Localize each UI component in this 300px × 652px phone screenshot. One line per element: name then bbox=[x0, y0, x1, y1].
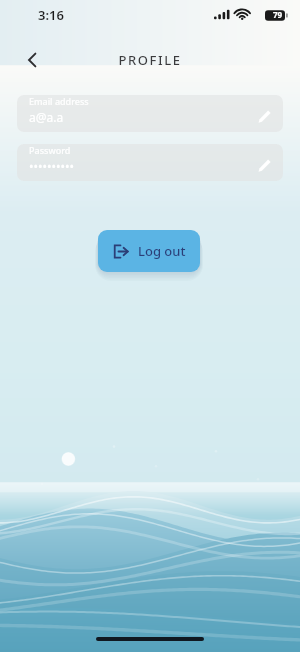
staticText: Password bbox=[29, 144, 71, 156]
staticText: a@a.a bbox=[29, 109, 64, 125]
button[interactable]: Log out bbox=[98, 230, 200, 272]
other: Edit email address bbox=[253, 105, 275, 127]
other: Edit password bbox=[253, 154, 275, 176]
staticText: 3:16 bbox=[38, 6, 64, 24]
staticText: Log out bbox=[138, 242, 186, 260]
button[interactable]: Back bbox=[16, 43, 50, 77]
staticText: •••••••••• bbox=[29, 158, 75, 174]
button[interactable]: Email address bbox=[17, 95, 283, 132]
button[interactable]: Password bbox=[17, 144, 283, 181]
staticText: 79 bbox=[273, 9, 283, 20]
staticText: Email address bbox=[29, 95, 89, 107]
staticText: PROFILE bbox=[118, 51, 182, 69]
